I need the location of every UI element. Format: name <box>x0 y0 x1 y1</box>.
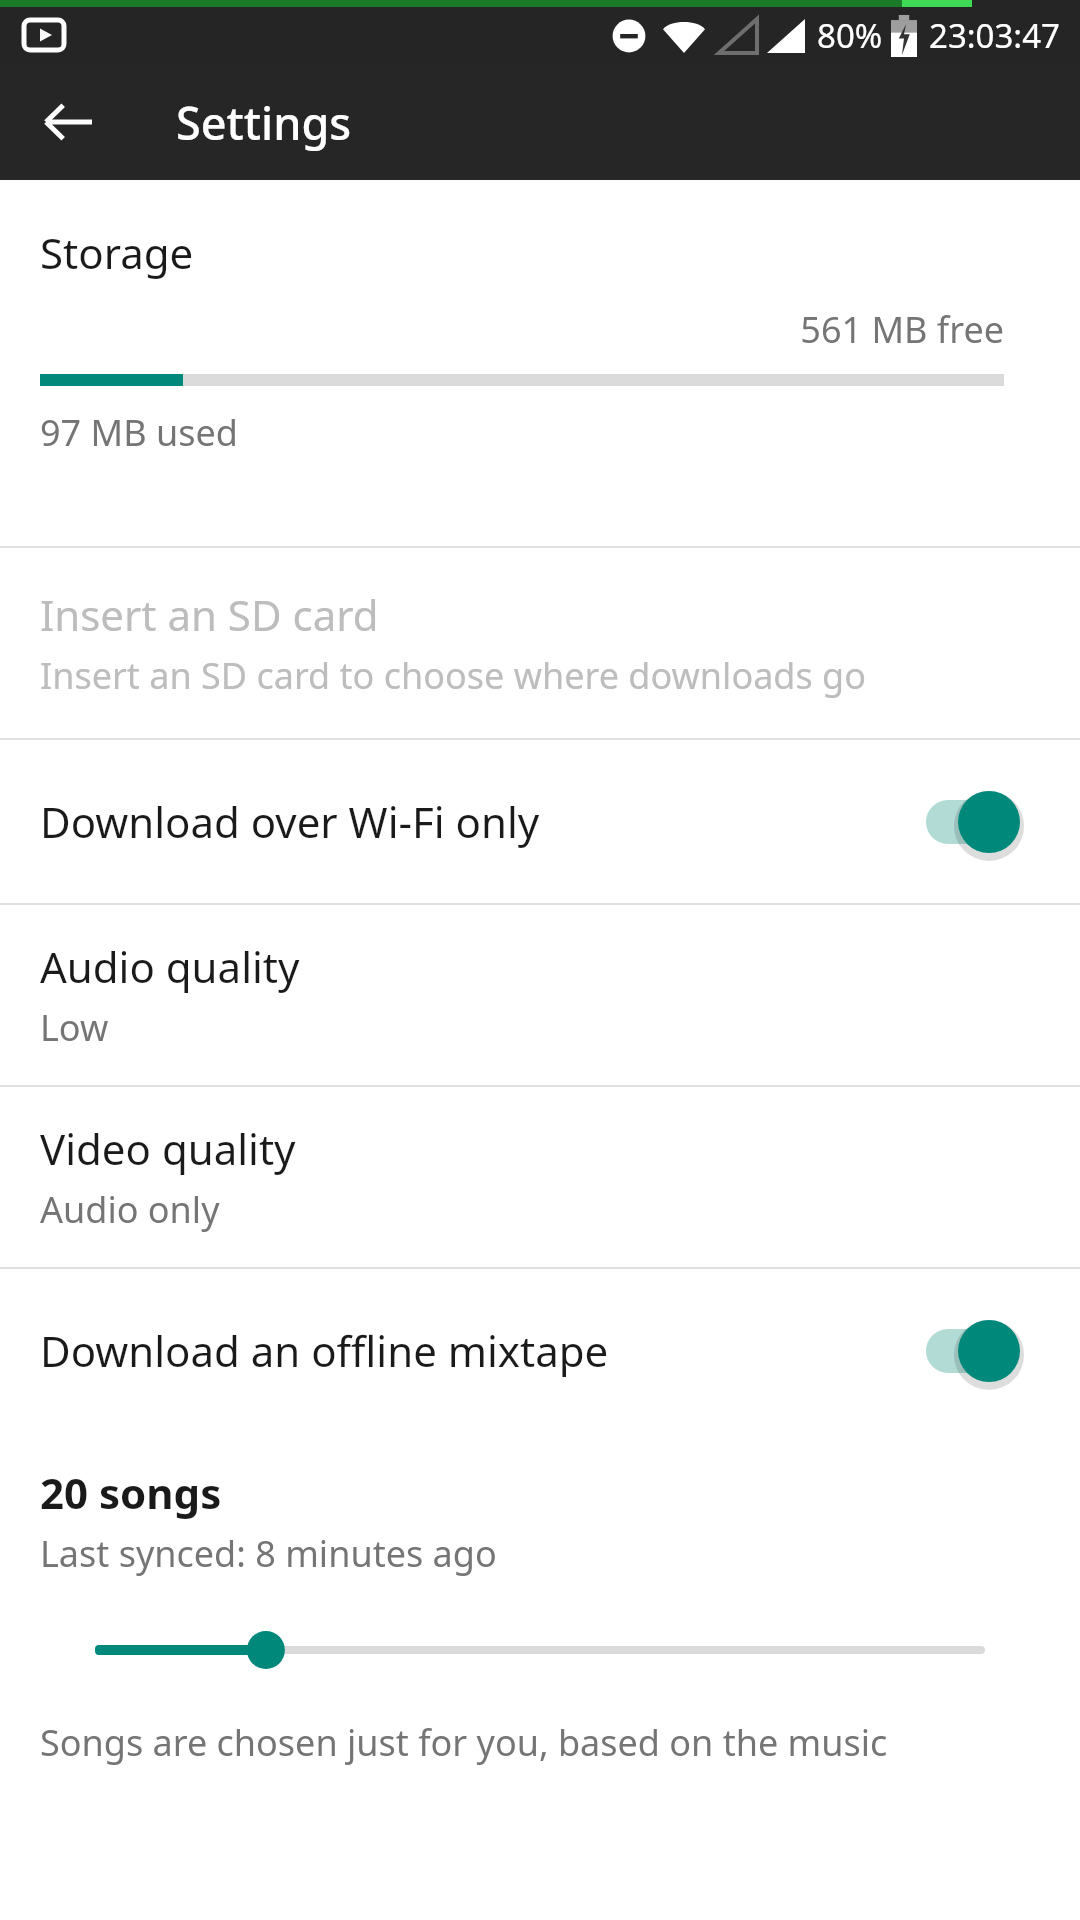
staticText: Audio quality <box>40 938 300 995</box>
staticText: 80% <box>817 13 883 58</box>
staticText: Songs are chosen just for you, based on … <box>40 1718 888 1767</box>
staticText: Settings <box>176 92 352 153</box>
button[interactable]: Navigate up <box>26 80 110 164</box>
staticText: 97 MB used <box>40 408 238 457</box>
staticText: Video quality <box>40 1120 296 1177</box>
button[interactable]: Audio quality <box>0 905 1080 1085</box>
staticText: 20 songs <box>40 1464 222 1521</box>
staticText: Insert an SD card <box>40 586 379 643</box>
staticText: Low <box>40 1003 109 1052</box>
staticText: Storage <box>40 224 194 281</box>
staticText: 561 MB free <box>40 305 1004 354</box>
button[interactable]: Number of songs <box>0 1622 1080 1678</box>
button[interactable]: Insert an SD card <box>0 548 1080 738</box>
staticText: Download over Wi-Fi only <box>40 793 926 850</box>
button[interactable]: Download over Wi-Fi only <box>0 740 1080 903</box>
button[interactable]: Video quality <box>0 1087 1080 1267</box>
button[interactable]: Download an offline mixtape <box>0 1269 1080 1432</box>
staticText: Download an offline mixtape <box>40 1322 926 1379</box>
staticText: Last synced: 8 minutes ago <box>40 1529 497 1578</box>
staticText: 23:03:47 <box>929 13 1060 58</box>
button[interactable]: Storage <box>0 180 1080 546</box>
staticText: Audio only <box>40 1185 220 1234</box>
staticText: Insert an SD card to choose where downlo… <box>40 651 867 700</box>
